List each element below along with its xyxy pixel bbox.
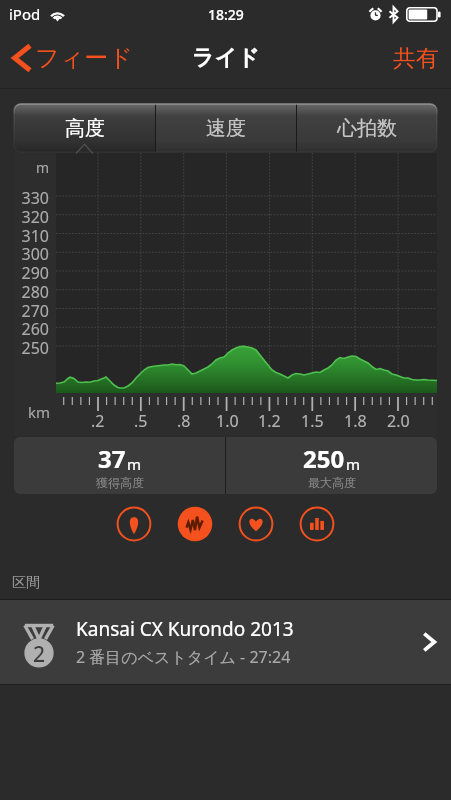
staticText: 250	[14, 337, 49, 359]
button[interactable]: 2	[0, 600, 451, 684]
button[interactable]: フィード	[0, 35, 143, 81]
staticText: 2 番目のベストタイム - 27:24	[76, 646, 291, 668]
staticText: 速度	[206, 116, 246, 141]
other: Open segment	[422, 631, 436, 653]
button[interactable]: Map	[116, 506, 152, 542]
staticText: .8	[177, 410, 191, 432]
staticText: Kansai CX Kurondo 2013	[76, 616, 294, 642]
button[interactable]: Elevation	[177, 506, 213, 542]
staticText: 250	[303, 442, 345, 475]
button[interactable]: 速度	[156, 104, 296, 152]
staticText: 最大高度	[308, 475, 356, 490]
staticText: 320	[14, 206, 49, 228]
staticText: km	[14, 402, 50, 422]
staticText: 区間	[12, 574, 40, 592]
button[interactable]: Analysis	[299, 506, 335, 542]
button[interactable]: 心拍数	[297, 104, 437, 152]
button[interactable]: 高度	[14, 104, 155, 152]
staticText: 290	[14, 262, 49, 284]
staticText: .5	[134, 410, 148, 432]
staticText: 310	[14, 225, 49, 247]
staticText: 300	[14, 243, 49, 265]
staticText: 330	[14, 187, 49, 209]
button[interactable]: 37	[14, 437, 225, 494]
staticText: 1.5	[301, 410, 324, 432]
staticText: 心拍数	[337, 116, 397, 141]
staticText: ライド	[192, 44, 260, 72]
staticText: 1.8	[344, 410, 367, 432]
staticText: 280	[14, 281, 49, 303]
staticText: 高度	[65, 116, 105, 141]
staticText: 2.0	[387, 410, 410, 432]
button[interactable]: Heart rate	[238, 506, 274, 542]
staticText: 37	[98, 442, 126, 475]
staticText: 共有	[393, 44, 439, 73]
staticText: m	[127, 454, 142, 474]
staticText: iPod	[9, 4, 41, 24]
button[interactable]: 共有	[381, 35, 451, 81]
staticText: m	[346, 454, 361, 474]
staticText: 18:29	[208, 5, 244, 24]
staticText: m	[14, 158, 49, 177]
button[interactable]: 250	[226, 437, 437, 494]
staticText: フィード	[35, 43, 133, 73]
staticText: 260	[14, 318, 49, 340]
staticText: 1.0	[216, 410, 239, 432]
staticText: 270	[14, 300, 49, 322]
staticText: .2	[91, 410, 105, 432]
staticText: 1.2	[258, 410, 281, 432]
staticText: 2	[33, 640, 46, 669]
staticText: 獲得高度	[96, 475, 144, 490]
